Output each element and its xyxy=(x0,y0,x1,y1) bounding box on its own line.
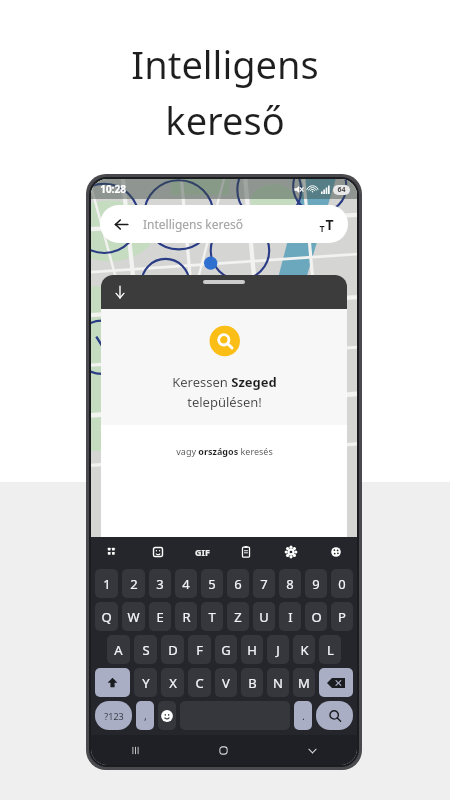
button[interactable]: O xyxy=(305,602,327,631)
button[interactable]: G xyxy=(215,635,237,664)
staticText: 9 xyxy=(312,575,320,593)
button[interactable]: 0 xyxy=(331,569,353,598)
button[interactable]: GIF xyxy=(193,544,212,560)
staticText: 10:28 xyxy=(100,182,126,196)
staticText: ?123 xyxy=(104,710,124,722)
button[interactable]: X xyxy=(161,668,184,697)
button[interactable]: C xyxy=(188,668,211,697)
button[interactable]: K xyxy=(293,635,315,664)
button[interactable]: 2 xyxy=(122,569,145,598)
button[interactable]: Search xyxy=(316,701,353,730)
button[interactable]: M xyxy=(293,668,315,697)
staticText: 7 xyxy=(260,575,268,593)
staticText: Y xyxy=(142,674,150,692)
button[interactable]: vagy országos keresés xyxy=(172,441,277,461)
staticText: O xyxy=(311,608,322,626)
staticText: P xyxy=(338,608,346,626)
staticText: H xyxy=(247,641,257,659)
staticText: 2 xyxy=(130,575,138,593)
staticText: 0 xyxy=(338,575,346,593)
staticText: T xyxy=(208,608,216,626)
staticText: , xyxy=(144,708,147,723)
staticText: A xyxy=(114,641,123,659)
staticText: Q xyxy=(101,608,112,626)
button[interactable]: J xyxy=(267,635,289,664)
button[interactable]: 9 xyxy=(305,569,327,598)
button[interactable]: Emoji xyxy=(158,701,176,730)
staticText: Z xyxy=(234,608,242,626)
staticText: 3 xyxy=(156,575,164,593)
staticText: Intelligens kereső xyxy=(143,216,243,232)
staticText: 1 xyxy=(103,575,111,593)
staticText: GIF xyxy=(195,546,210,558)
button[interactable]: D xyxy=(161,635,184,664)
button[interactable]: Settings xyxy=(280,541,302,563)
staticText: 5 xyxy=(208,575,216,593)
button[interactable]: H xyxy=(241,635,263,664)
button[interactable]: Recents xyxy=(91,735,179,765)
button[interactable]: Clipboard xyxy=(235,541,257,563)
staticText: T xyxy=(325,215,334,234)
staticText: 4 xyxy=(182,575,190,593)
staticText: C xyxy=(195,674,204,692)
staticText: Keressen Szeged xyxy=(172,373,277,391)
button[interactable]: I xyxy=(279,602,301,631)
staticText: T xyxy=(319,222,325,234)
staticText: N xyxy=(273,674,283,692)
button[interactable]: R xyxy=(175,602,197,631)
button[interactable]: B xyxy=(241,668,263,697)
button[interactable]: Collapse xyxy=(109,281,131,303)
button[interactable]: W xyxy=(122,602,145,631)
button[interactable]: Shift xyxy=(95,668,130,697)
button[interactable]: 3 xyxy=(149,569,171,598)
staticText: G xyxy=(221,641,231,659)
button[interactable]: S xyxy=(134,635,157,664)
staticText: 6 xyxy=(234,575,242,593)
button[interactable]: T xyxy=(201,602,223,631)
button[interactable]: Backspace xyxy=(319,668,353,697)
staticText: K xyxy=(300,641,309,659)
button[interactable]: 8 xyxy=(279,569,301,598)
button[interactable]: 7 xyxy=(253,569,275,598)
staticText: Intelligens xyxy=(131,38,319,90)
button[interactable]: Home xyxy=(179,735,268,765)
button[interactable]: U xyxy=(253,602,275,631)
button[interactable]: Back xyxy=(268,735,357,765)
button[interactable]: Back xyxy=(100,205,348,243)
button[interactable]: Y xyxy=(134,668,157,697)
staticText: I xyxy=(288,608,293,626)
staticText: M xyxy=(298,674,310,692)
staticText: településen! xyxy=(187,393,262,411)
staticText: B xyxy=(248,674,257,692)
button[interactable]: 6 xyxy=(227,569,249,598)
button[interactable]: Z xyxy=(227,602,249,631)
button[interactable]: ?123 xyxy=(95,701,132,730)
button[interactable]: P xyxy=(331,602,353,631)
button[interactable]: V xyxy=(215,668,237,697)
staticText: J xyxy=(276,641,280,659)
staticText: X xyxy=(169,674,177,692)
staticText: V xyxy=(222,674,230,692)
button[interactable]: 5 xyxy=(201,569,223,598)
button[interactable]: Back xyxy=(111,214,131,234)
button[interactable]: Q xyxy=(95,602,118,631)
button[interactable]: . xyxy=(294,701,312,730)
staticText: 8 xyxy=(286,575,294,593)
staticText: 64 xyxy=(337,185,346,195)
button[interactable]: L xyxy=(319,635,341,664)
button[interactable]: Stickers xyxy=(147,541,169,563)
staticText: L xyxy=(327,641,334,659)
button[interactable]: 1 xyxy=(95,569,118,598)
button[interactable]: E xyxy=(149,602,171,631)
button[interactable]: , xyxy=(136,701,154,730)
button[interactable]: 4 xyxy=(175,569,197,598)
button[interactable]: N xyxy=(267,668,289,697)
button[interactable]: Themes xyxy=(325,541,347,563)
button[interactable]: Text size xyxy=(315,213,337,235)
staticText: kereső xyxy=(165,94,285,146)
button[interactable]: A xyxy=(107,635,130,664)
button[interactable]: F xyxy=(188,635,211,664)
button[interactable]: Keyboard layouts xyxy=(101,541,123,563)
staticText: . xyxy=(302,708,305,723)
